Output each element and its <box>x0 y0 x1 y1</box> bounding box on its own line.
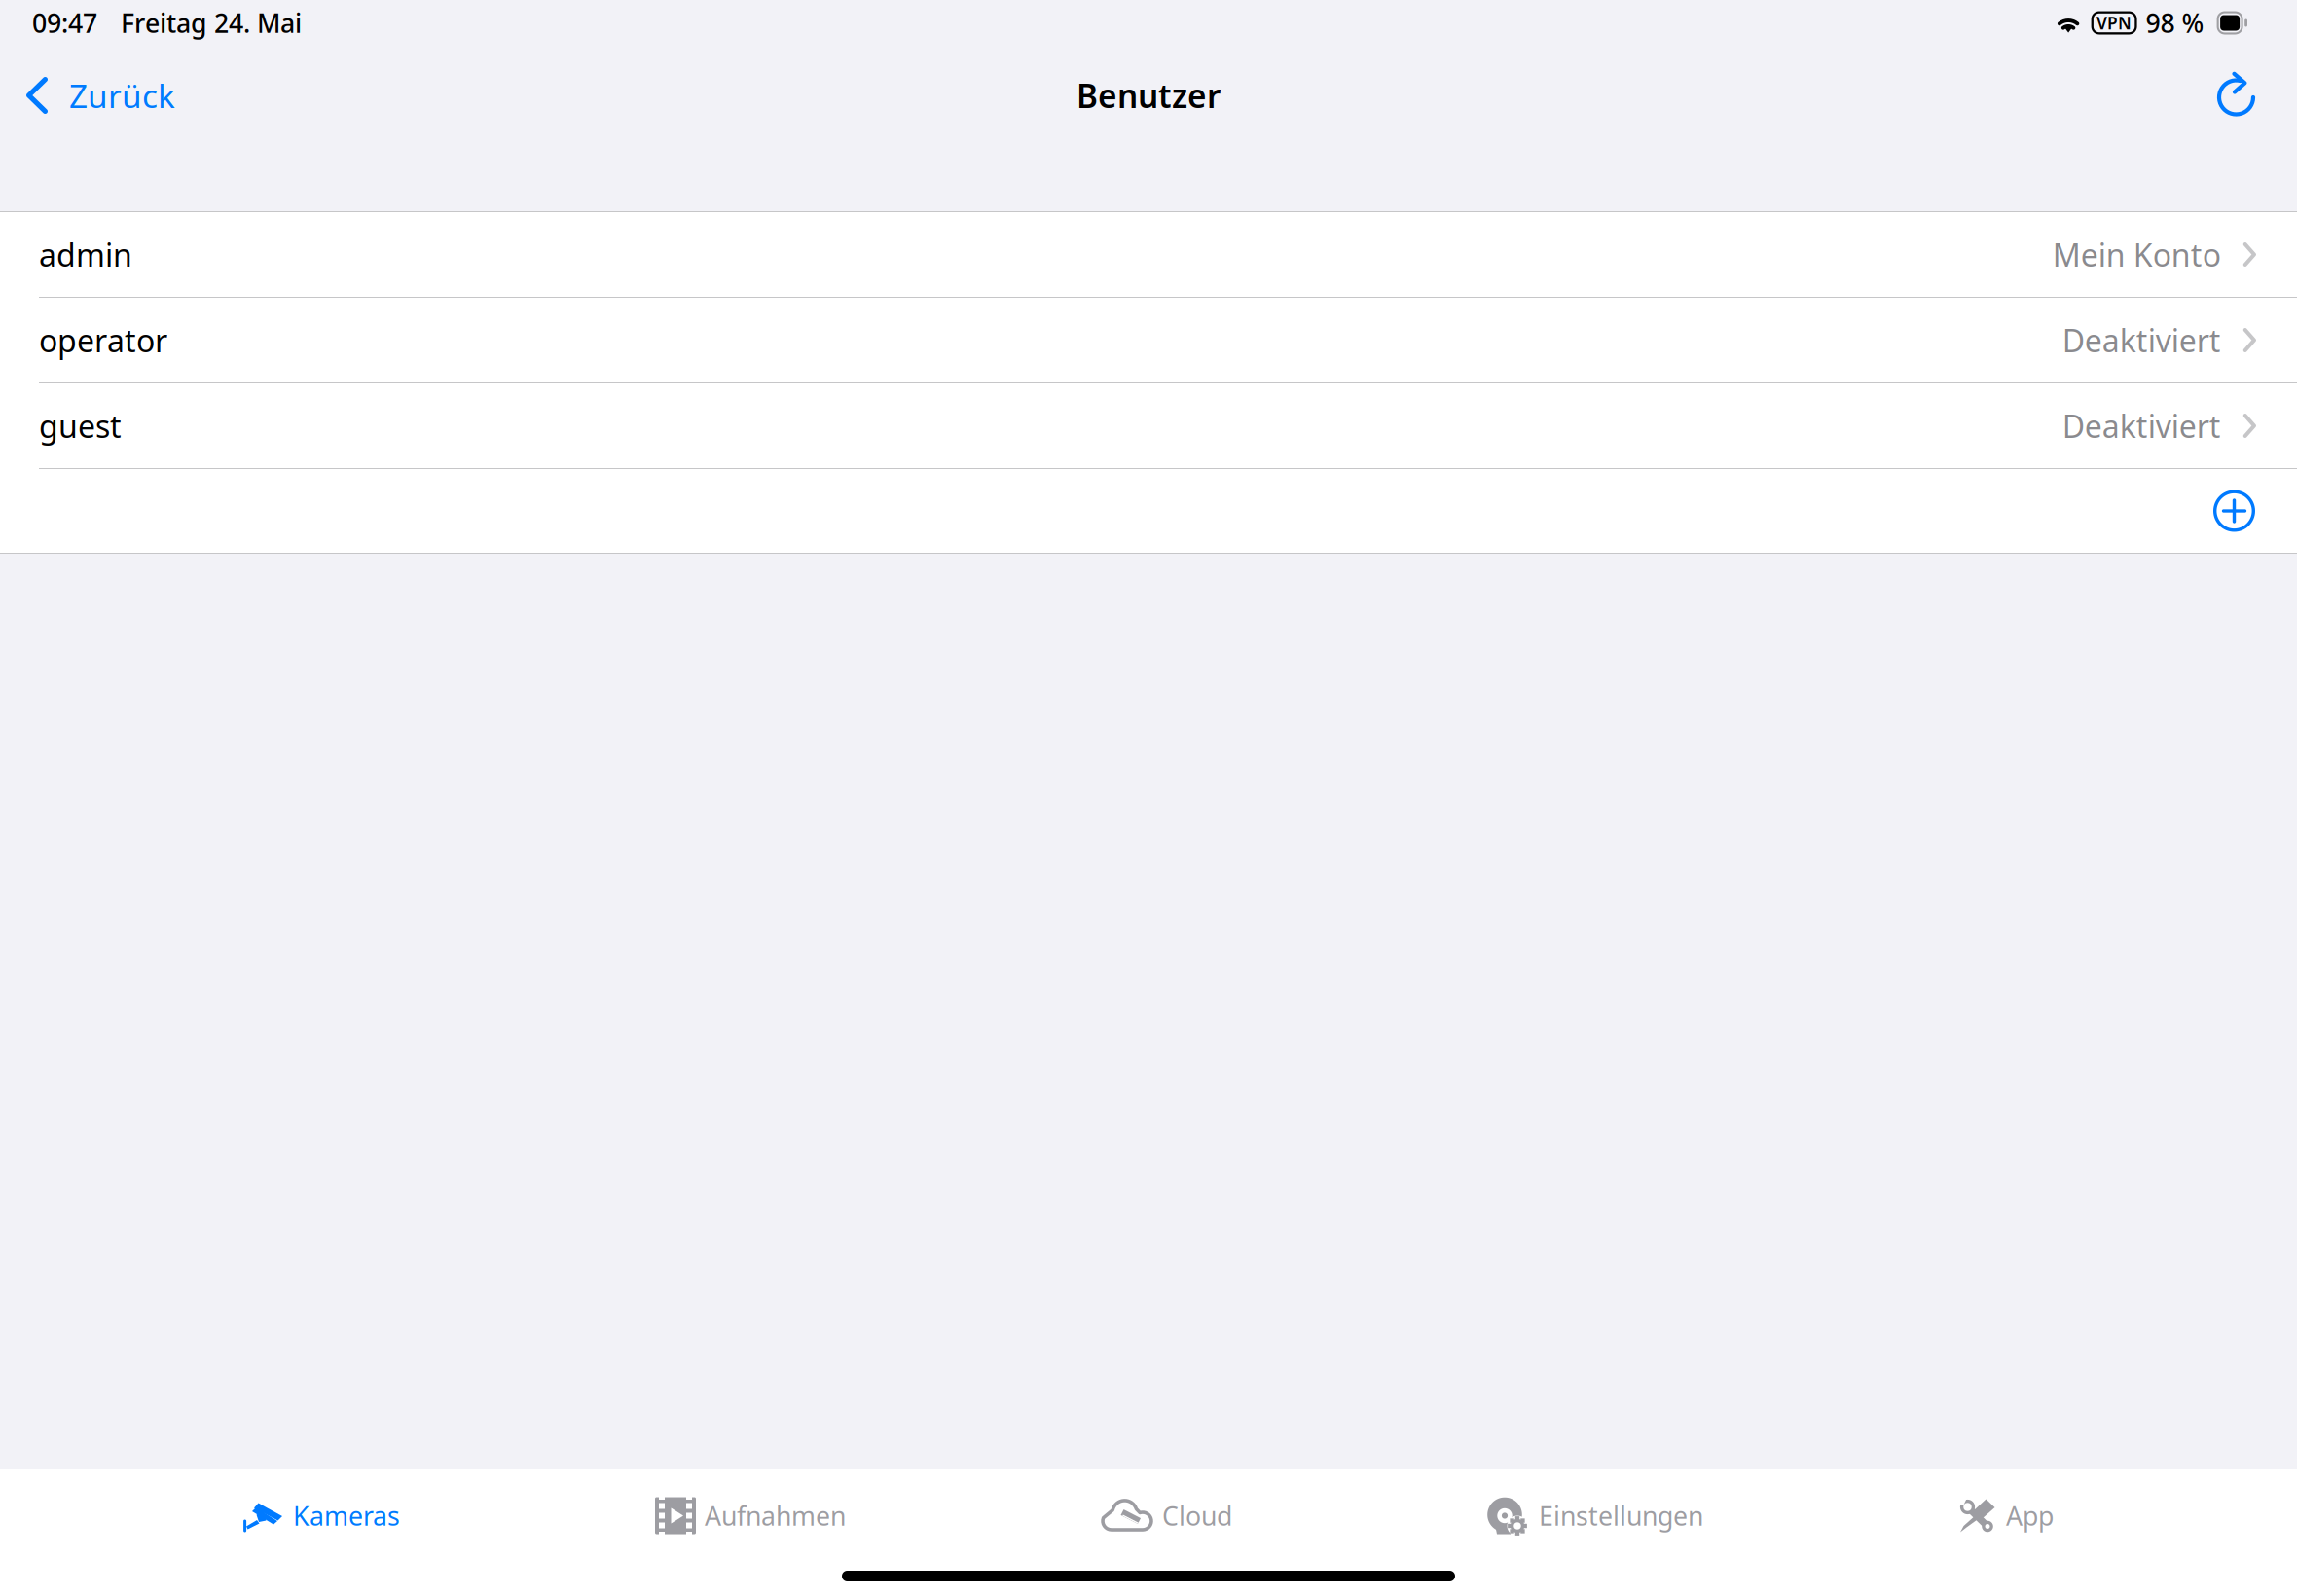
button[interactable]: admin <box>0 212 2297 297</box>
button[interactable]: Aktualisieren <box>2194 46 2297 145</box>
button[interactable]: Benutzer hinzufügen <box>0 469 2297 553</box>
staticText: Mein Konto <box>2053 234 2221 275</box>
button[interactable]: Zurück <box>0 46 197 145</box>
staticText: 98 % <box>2146 6 2204 40</box>
staticText: admin <box>39 234 132 275</box>
staticText: Freitag 24. Mai <box>121 6 302 40</box>
staticText: Aufnahmen <box>705 1498 846 1533</box>
staticText: Deaktiviert <box>2062 319 2221 361</box>
staticText: Zurück <box>69 74 175 117</box>
staticText: guest <box>39 405 122 446</box>
staticText: Benutzer <box>1076 74 1221 117</box>
staticText: App <box>2006 1498 2054 1533</box>
button[interactable]: Cloud <box>1101 1486 1232 1546</box>
staticText: Kameras <box>293 1498 400 1533</box>
staticText: operator <box>39 319 167 361</box>
button[interactable]: Aufnahmen <box>655 1486 846 1546</box>
button[interactable]: Kameras <box>243 1486 400 1546</box>
staticText: 09:47 <box>32 6 97 40</box>
staticText: Deaktiviert <box>2062 405 2221 446</box>
button[interactable]: App <box>1958 1486 2054 1546</box>
button[interactable]: operator <box>0 298 2297 382</box>
button[interactable]: guest <box>0 383 2297 468</box>
button[interactable]: Einstellungen <box>1487 1486 1703 1546</box>
staticText: Einstellungen <box>1539 1498 1703 1533</box>
staticText: VPN <box>2097 12 2132 34</box>
staticText: Cloud <box>1162 1498 1232 1533</box>
